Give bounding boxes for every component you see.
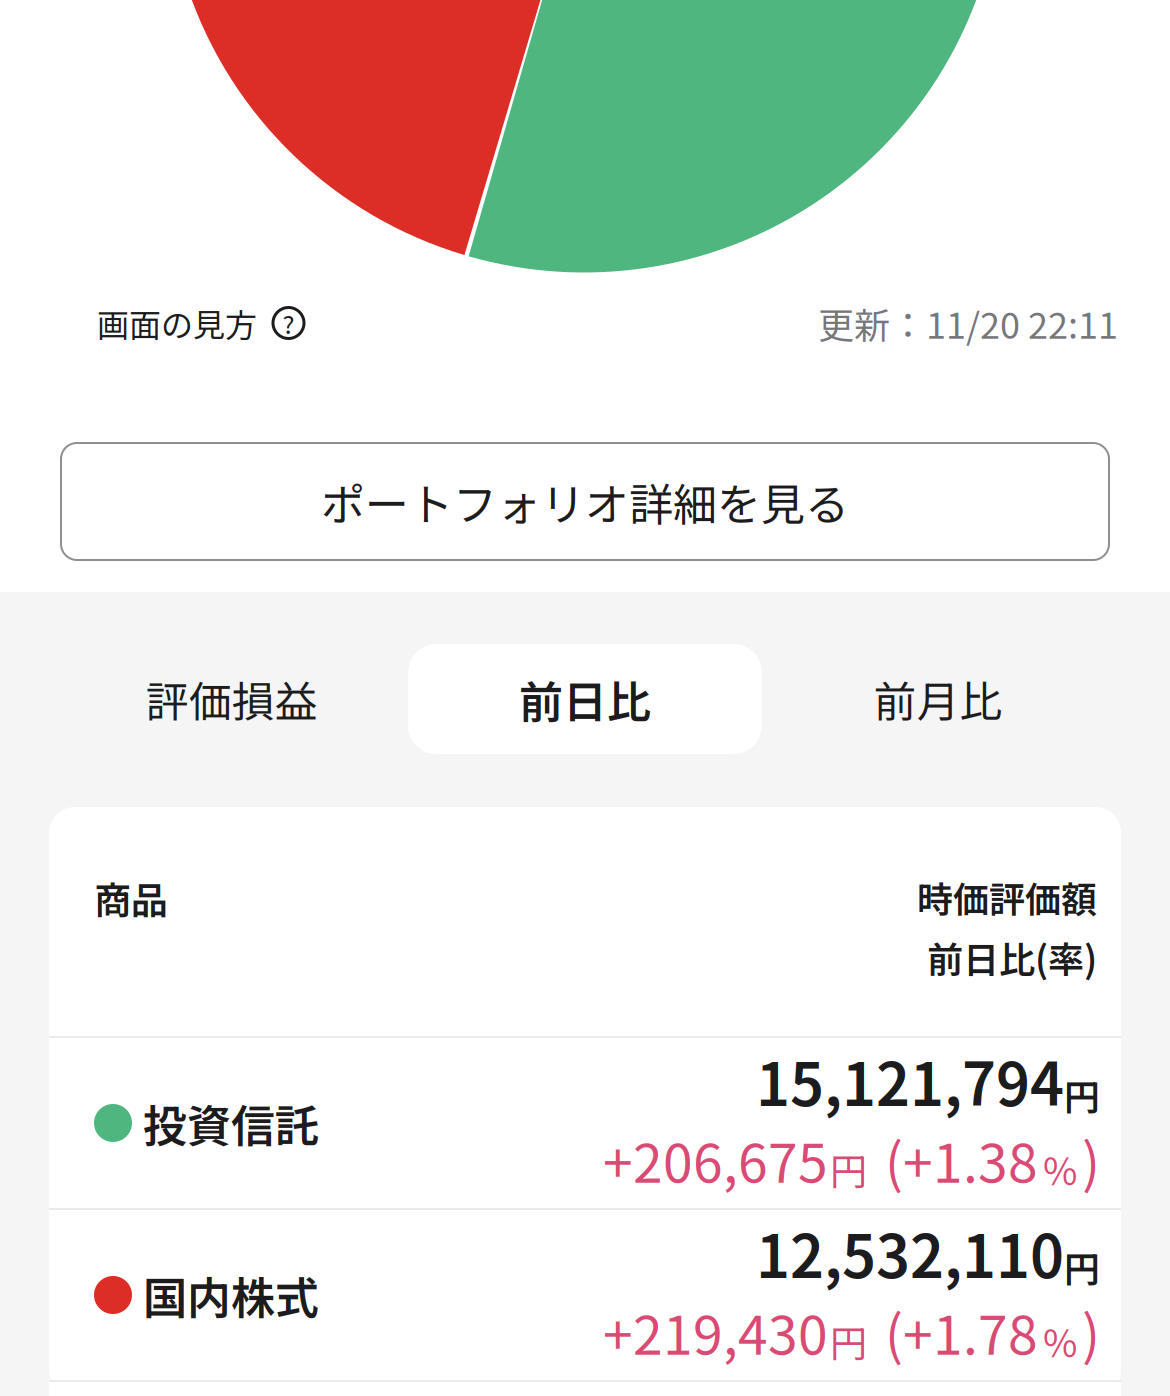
- staticText: 時価評価額: [917, 871, 1097, 923]
- staticText: 円: [830, 1142, 867, 1196]
- staticText: 円: [1064, 1241, 1100, 1293]
- button[interactable]: 前日比: [408, 644, 762, 754]
- staticText: +219,430: [603, 1293, 828, 1370]
- staticText: 前日比(率): [927, 931, 1097, 983]
- staticText: (: [885, 1293, 903, 1370]
- staticText: ポートフォリオ詳細を見る: [321, 470, 849, 533]
- staticText: 投資信託: [143, 1091, 319, 1155]
- staticText: 15,121,794: [756, 1038, 1064, 1123]
- staticText: 商品: [94, 871, 168, 925]
- staticText: 評価損益: [146, 668, 318, 730]
- staticText: +206,675: [603, 1121, 828, 1198]
- staticText: ): [1082, 1293, 1100, 1370]
- staticText: +1.38: [903, 1121, 1038, 1198]
- button[interactable]: 投資信託: [49, 1038, 1121, 1208]
- button[interactable]: 国内株式: [49, 1210, 1121, 1380]
- staticText: 円: [1064, 1069, 1100, 1121]
- staticText: +1.78: [903, 1293, 1038, 1370]
- staticText: ?: [282, 305, 294, 341]
- staticText: 画面の見方: [97, 300, 257, 346]
- staticText: %: [1043, 1142, 1077, 1196]
- staticText: 更新：11/20 22:11: [818, 297, 1118, 349]
- button[interactable]: 前月比: [762, 644, 1115, 754]
- staticText: (: [885, 1121, 903, 1198]
- staticText: 前日比: [519, 667, 651, 731]
- button[interactable]: ポートフォリオ詳細を見る: [61, 443, 1109, 560]
- button[interactable]: 画面の見方: [97, 300, 304, 346]
- staticText: %: [1043, 1314, 1077, 1368]
- staticText: 国内株式: [143, 1263, 319, 1327]
- staticText: ): [1082, 1121, 1100, 1198]
- staticText: 円: [830, 1314, 867, 1368]
- button[interactable]: 評価損益: [55, 644, 408, 754]
- staticText: 前月比: [874, 668, 1003, 730]
- staticText: 12,532,110: [756, 1210, 1064, 1295]
